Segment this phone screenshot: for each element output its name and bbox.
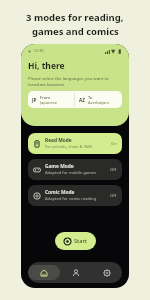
staticText: Game Mode xyxy=(45,163,74,170)
button[interactable]: Comic Mode xyxy=(28,185,122,206)
staticText: Azerbaijani xyxy=(88,100,109,105)
staticText: 12:30 xyxy=(33,48,44,54)
staticText: From xyxy=(40,95,50,100)
staticText: AZ xyxy=(79,97,85,103)
button[interactable]: Read Mode xyxy=(28,133,122,154)
button[interactable]: Game Mode xyxy=(28,159,122,180)
staticText: Off xyxy=(110,193,117,199)
button[interactable]: Settings xyxy=(91,262,122,283)
staticText: Start xyxy=(74,237,87,245)
staticText: Comic Mode xyxy=(45,189,75,196)
staticText: On xyxy=(111,141,117,147)
button[interactable]: JP xyxy=(28,91,74,108)
button[interactable]: Profile xyxy=(60,262,91,283)
staticText: JP xyxy=(32,97,37,103)
staticText: Please select the languages you want to xyxy=(28,75,109,81)
staticText: games and comics xyxy=(32,25,119,38)
button[interactable]: Start xyxy=(55,232,96,250)
staticText: Adapted for mobile games xyxy=(45,170,97,176)
staticText: Read Mode xyxy=(45,137,72,144)
staticText: Off xyxy=(110,167,117,173)
staticText: To xyxy=(88,95,93,100)
button[interactable]: AZ xyxy=(75,91,122,108)
staticText: Hi, there xyxy=(28,60,65,72)
staticText: Japanese xyxy=(40,100,57,105)
staticText: translate between xyxy=(28,81,65,87)
staticText: Adapted for comic reading xyxy=(45,196,97,202)
staticText: For articals, chats & SMS xyxy=(45,144,92,150)
staticText: 3 modes for reading, xyxy=(26,11,124,24)
button[interactable]: Home xyxy=(28,262,60,283)
